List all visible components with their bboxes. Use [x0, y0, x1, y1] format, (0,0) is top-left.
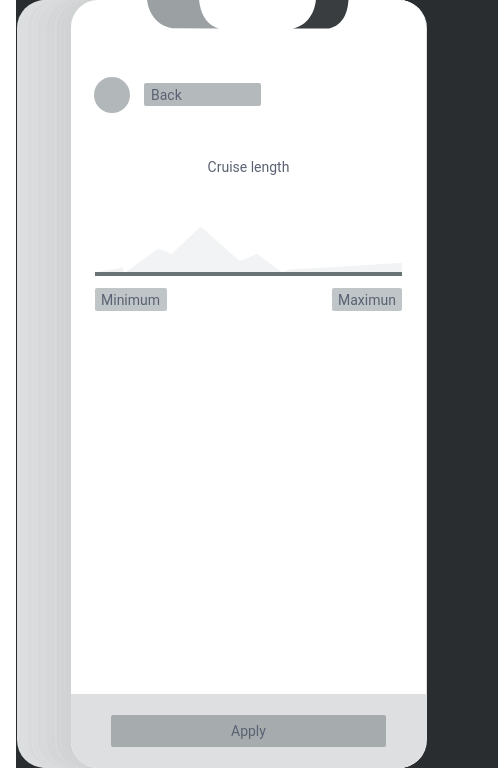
- button[interactable]: Maximun: [332, 288, 402, 311]
- button[interactable]: Apply: [111, 715, 386, 747]
- staticText: Maximun: [338, 292, 396, 308]
- staticText: Back: [151, 87, 182, 103]
- staticText: Minimum: [101, 292, 161, 308]
- button[interactable]: Minimum: [95, 288, 167, 311]
- staticText: Cruise length: [71, 159, 426, 175]
- staticText: Apply: [231, 723, 266, 739]
- button[interactable]: Profile: [94, 77, 130, 113]
- button[interactable]: Back: [144, 83, 261, 106]
